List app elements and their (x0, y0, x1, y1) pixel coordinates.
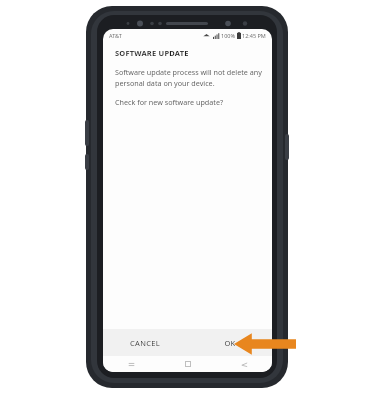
button[interactable]: OK (187, 329, 272, 356)
staticText: 100% (221, 32, 236, 39)
staticText: Check for new software update? (115, 97, 224, 107)
button[interactable]: Back (216, 356, 272, 372)
staticText: Software update process will not delete … (115, 67, 262, 88)
staticText: CANCEL (130, 338, 160, 348)
staticText: OK (224, 338, 236, 348)
staticText: AT&T (109, 32, 122, 39)
staticText: SOFTWARE UPDATE (115, 48, 189, 58)
staticText: 12:45 PM (242, 32, 266, 39)
button[interactable]: Recent apps (103, 356, 160, 372)
button[interactable]: CANCEL (103, 329, 187, 356)
button[interactable]: Home (160, 356, 216, 372)
